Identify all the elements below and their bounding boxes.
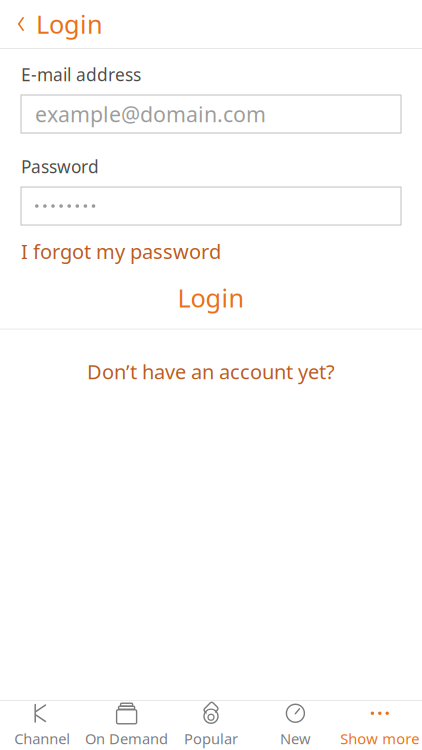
button[interactable]: Show more [338,701,422,750]
button[interactable]: Don’t have an account yet? [0,350,422,394]
staticText: Login [177,281,244,314]
staticText: Password [21,155,99,178]
button[interactable]: Channel [0,701,84,750]
button[interactable]: Popular [169,701,253,750]
staticText: New [280,729,311,748]
staticText: E-mail address [21,63,141,86]
button[interactable]: On Demand [84,701,169,750]
staticText: Show more [340,729,419,748]
button[interactable]: I forgot my password [21,234,221,269]
button[interactable]: Login [0,277,422,319]
staticText: Login [36,7,103,41]
staticText: Popular [184,729,238,748]
staticText: I forgot my password [21,238,221,265]
button[interactable]: Back to Login [0,0,115,48]
staticText: example@domain.com [35,100,266,128]
button[interactable]: New [253,701,338,750]
staticText: Don’t have an account yet? [87,358,335,385]
staticText: Channel [14,729,70,748]
staticText: On Demand [85,729,168,748]
